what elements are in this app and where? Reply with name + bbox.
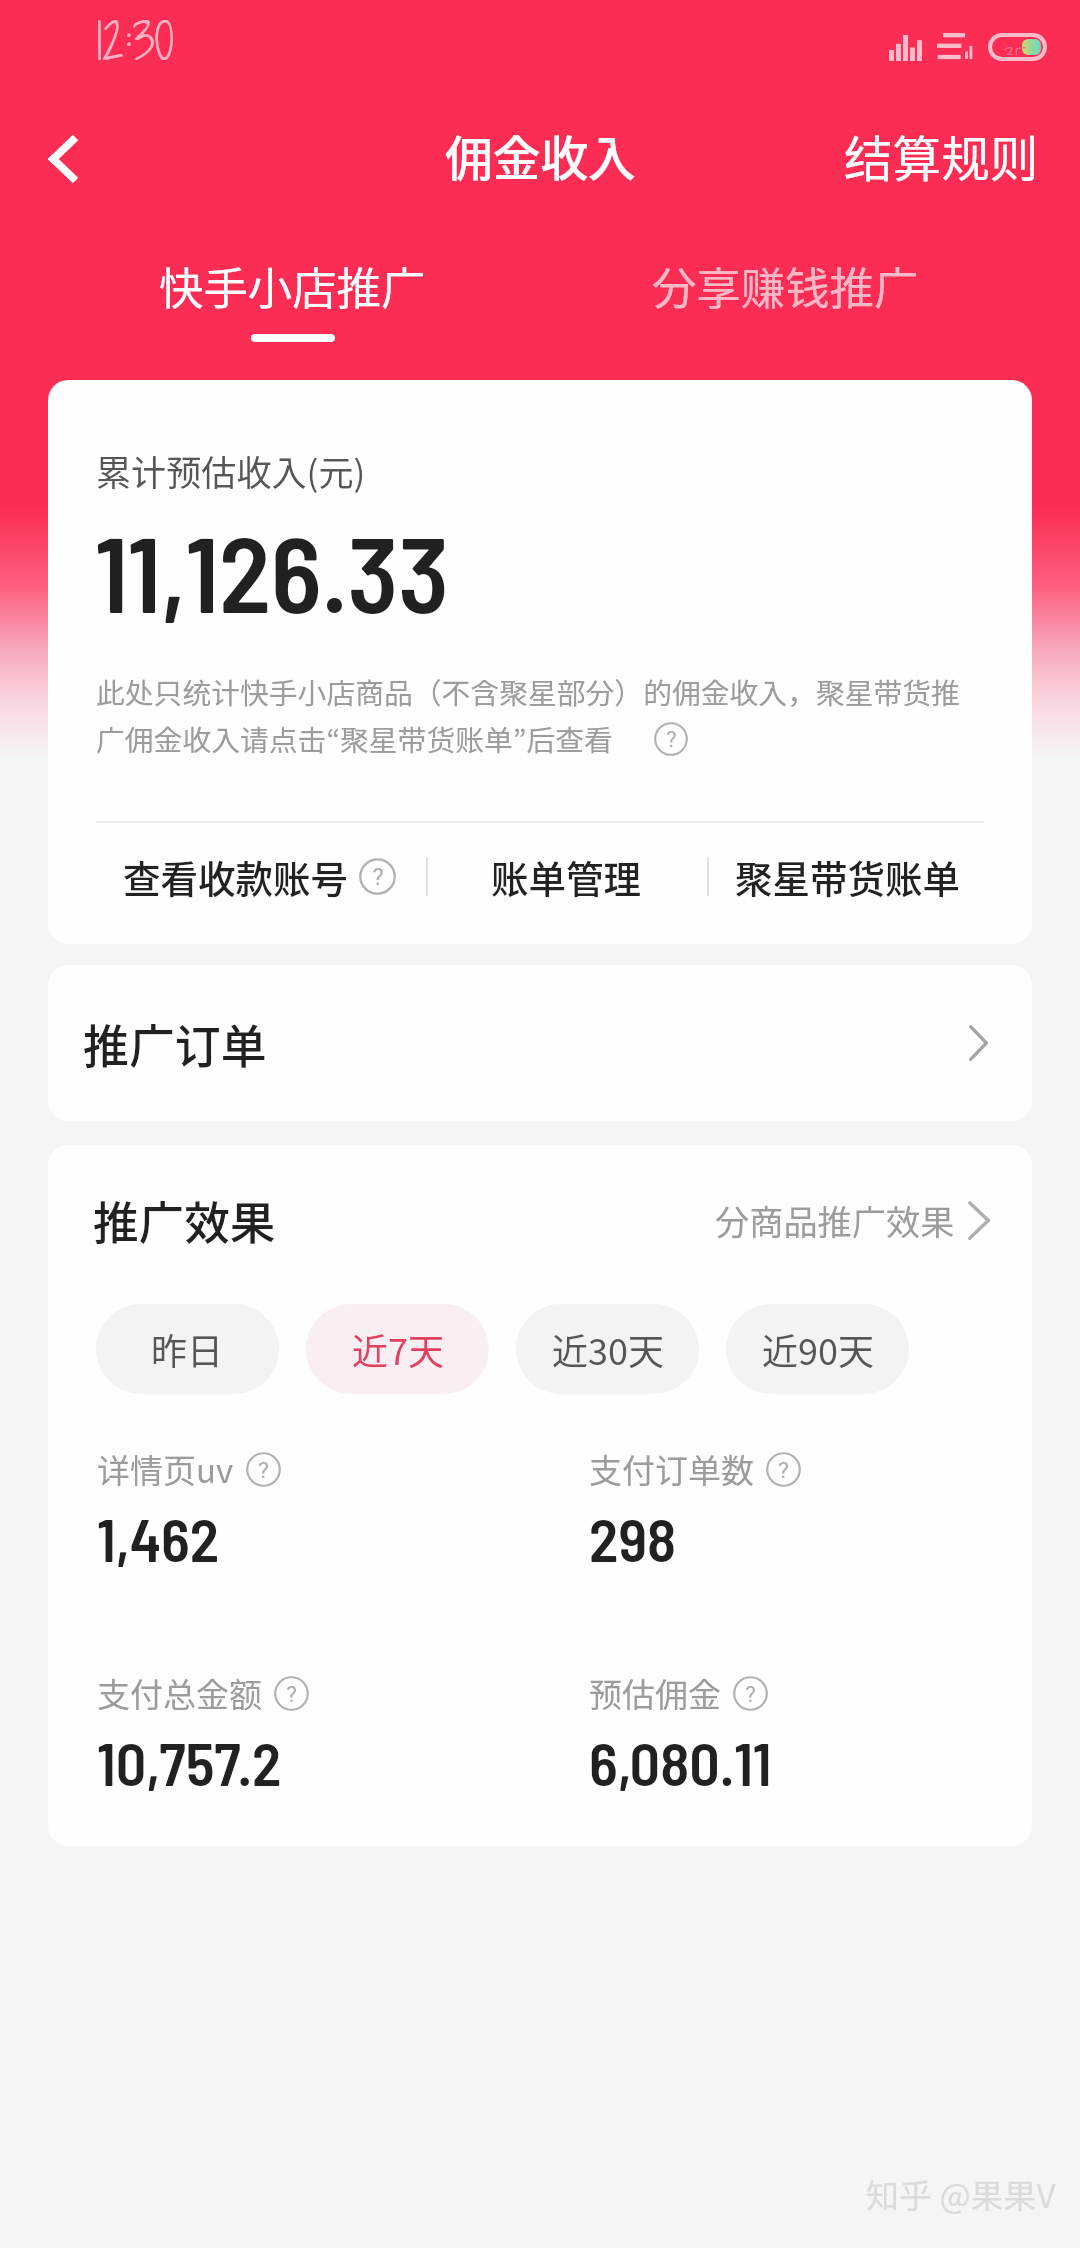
staticText: 35 bbox=[1004, 39, 1027, 55]
staticText: 预估佣金 bbox=[589, 1669, 721, 1717]
staticText: 广佣金收入请点击“聚星带货账单”后查看 bbox=[96, 718, 613, 760]
staticText: 账单管理 bbox=[491, 849, 641, 903]
staticText: 支付订单数 bbox=[589, 1445, 754, 1493]
button[interactable]: 查看收款账号 bbox=[48, 849, 426, 903]
staticText: 此处只统计快手小店商品（不含聚星部分）的佣金收入，聚星带货推 bbox=[96, 671, 960, 713]
staticText: ? bbox=[372, 863, 384, 891]
staticText: ? bbox=[258, 1457, 269, 1483]
staticText: 佣金收入 bbox=[445, 121, 636, 190]
staticText: 支付总金额 bbox=[97, 1669, 262, 1717]
staticText: 快手小店推广 bbox=[159, 253, 426, 317]
staticText: 结算规则 bbox=[844, 121, 1039, 191]
staticText: 详情页uv bbox=[97, 1445, 234, 1493]
button[interactable]: 聚星带货账单 bbox=[709, 849, 960, 903]
staticText: 聚星带货账单 bbox=[735, 849, 960, 903]
staticText: 1,462 bbox=[97, 1502, 220, 1574]
staticText: ? bbox=[778, 1457, 789, 1483]
staticText: 推广订单 bbox=[83, 1010, 267, 1076]
staticText: 6,080.11 bbox=[589, 1726, 772, 1798]
button[interactable]: 推广订单 bbox=[48, 965, 1032, 1121]
button[interactable]: 快手小店推广 bbox=[159, 250, 426, 342]
staticText: 推广效果 bbox=[93, 1187, 276, 1253]
staticText: 知乎 @果果V bbox=[866, 2170, 1056, 2218]
staticText: ? bbox=[745, 1681, 756, 1707]
button[interactable]: 分商品推广效果 bbox=[715, 1195, 990, 1245]
staticText: 近30天 bbox=[552, 1323, 664, 1375]
staticText: 近7天 bbox=[352, 1323, 444, 1375]
staticText: 11,126.33 bbox=[95, 507, 449, 634]
button[interactable]: 近30天 bbox=[516, 1304, 699, 1394]
button[interactable]: Back bbox=[9, 105, 117, 213]
staticText: 查看收款账号 bbox=[123, 849, 348, 903]
staticText: 12:30 bbox=[96, 6, 174, 76]
button[interactable]: 分享赚钱推广 bbox=[652, 250, 919, 317]
staticText: 分享赚钱推广 bbox=[652, 253, 919, 317]
staticText: ? bbox=[286, 1681, 297, 1707]
staticText: 昨日 bbox=[151, 1323, 224, 1375]
staticText: 分商品推广效果 bbox=[715, 1195, 955, 1245]
staticText: 298 bbox=[589, 1502, 677, 1574]
staticText: ? bbox=[666, 727, 677, 752]
staticText: 累计预估收入(元) bbox=[96, 445, 366, 496]
staticText: 近90天 bbox=[762, 1323, 874, 1375]
button[interactable]: 昨日 bbox=[96, 1304, 279, 1394]
button[interactable]: 近90天 bbox=[726, 1304, 909, 1394]
button[interactable]: 账单管理 bbox=[428, 849, 707, 903]
staticText: 10,757.2 bbox=[97, 1726, 282, 1798]
button[interactable]: 近7天 bbox=[306, 1304, 489, 1394]
button[interactable]: 结算规则 bbox=[814, 109, 1080, 203]
